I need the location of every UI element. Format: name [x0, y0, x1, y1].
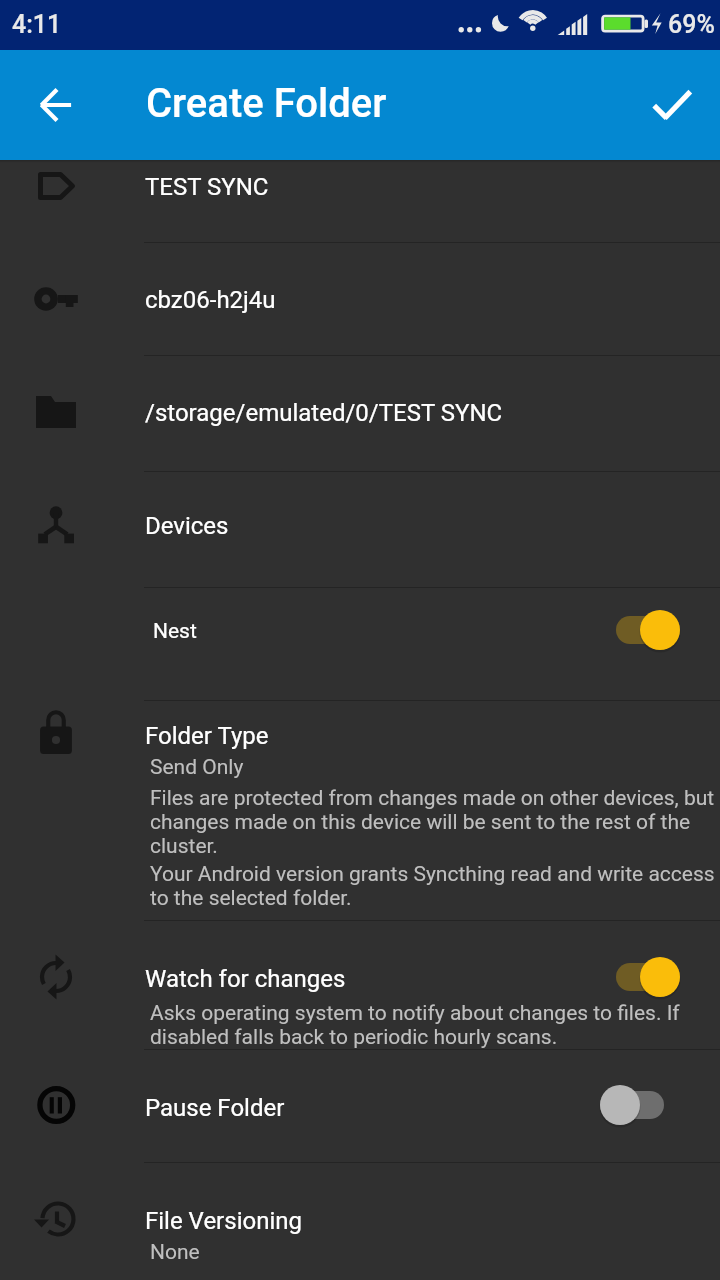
staticText: 69%	[668, 10, 715, 39]
button[interactable]	[0, 242, 720, 355]
staticText: None	[150, 1240, 200, 1265]
button[interactable]: Toggle on	[606, 602, 690, 658]
button[interactable]	[0, 471, 720, 587]
button[interactable]	[0, 920, 720, 1049]
button[interactable]: Toggle off	[590, 1077, 674, 1133]
staticText: Create Folder	[146, 80, 387, 127]
button[interactable]	[0, 700, 720, 920]
button[interactable]: Back	[24, 73, 88, 137]
staticText: Asks operating system to notify about ch…	[150, 1001, 698, 1049]
staticText: Devices	[145, 512, 229, 540]
button[interactable]	[0, 355, 720, 471]
staticText: Folder Type	[145, 722, 269, 750]
button[interactable]	[0, 1049, 720, 1162]
button[interactable]: Toggle on	[606, 949, 690, 1005]
staticText: Watch for changes	[145, 965, 346, 993]
staticText: Pause Folder	[145, 1094, 285, 1122]
button[interactable]	[0, 127, 720, 242]
staticText: 4:11	[12, 10, 62, 39]
staticText: Send Only	[150, 755, 244, 780]
button[interactable]	[0, 1162, 720, 1280]
button[interactable]	[0, 587, 720, 700]
button[interactable]: Save	[640, 71, 704, 135]
staticText: Files are protected from changes made on…	[150, 786, 718, 858]
staticText: Nest	[153, 619, 197, 644]
staticText: Your Android version grants Syncthing re…	[150, 862, 718, 910]
staticText: cbz06-h2j4u	[145, 286, 276, 314]
staticText: TEST SYNC	[145, 173, 269, 201]
staticText: /storage/emulated/0/TEST SYNC	[145, 399, 503, 427]
staticText: File Versioning	[145, 1207, 302, 1235]
